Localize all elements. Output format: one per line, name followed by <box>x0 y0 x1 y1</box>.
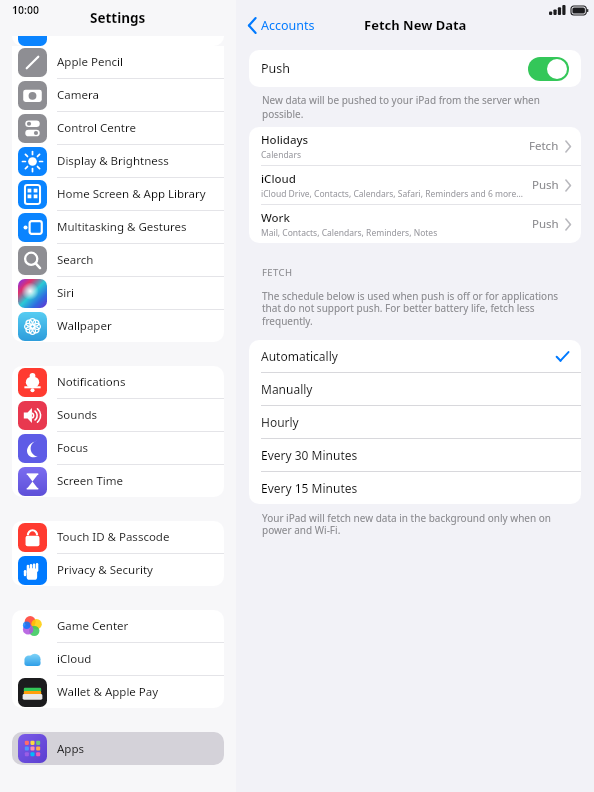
button[interactable]: Privacy & Security <box>12 554 224 586</box>
staticText: Notifications <box>57 374 126 390</box>
staticText: iCloud Drive, Contacts, Calendars, Safar… <box>261 188 523 200</box>
staticText: Settings <box>90 9 146 27</box>
button[interactable]: Multitasking & Gestures <box>12 211 224 243</box>
staticText: Search <box>57 252 94 268</box>
staticText: Every 15 Minutes <box>261 480 358 496</box>
staticText: Hourly <box>261 414 299 430</box>
staticText: iCloud <box>57 651 92 667</box>
button[interactable]: Focus <box>12 432 224 464</box>
button[interactable]: Siri <box>12 277 224 309</box>
button[interactable]: Apple Pencil <box>12 46 224 78</box>
staticText: Camera <box>57 87 99 103</box>
staticText: Sounds <box>57 407 98 423</box>
staticText: Game Center <box>57 618 129 634</box>
staticText: Automatically <box>261 348 338 364</box>
button[interactable]: Touch ID & Passcode <box>12 521 224 553</box>
button[interactable]: Notifications <box>12 366 224 398</box>
staticText: New data will be pushed to your iPad fro… <box>262 93 568 121</box>
button[interactable]: Camera <box>12 79 224 111</box>
button[interactable]: Search <box>12 244 224 276</box>
staticText: Every 30 Minutes <box>261 447 358 463</box>
staticText: Fetch <box>529 138 559 154</box>
button[interactable]: Wallpaper <box>12 310 224 342</box>
button[interactable]: Game Center <box>12 610 224 642</box>
staticText: Focus <box>57 440 89 456</box>
staticText: Push <box>261 60 291 77</box>
staticText: Apps <box>57 741 85 757</box>
button[interactable]: Push toggle, on <box>528 57 569 81</box>
button[interactable]: Automatically <box>249 340 581 372</box>
button[interactable]: Apps <box>12 732 224 765</box>
staticText: FETCH <box>262 266 293 279</box>
staticText: Work <box>261 210 290 226</box>
staticText: Push <box>532 177 559 193</box>
button[interactable]: Work <box>249 205 581 243</box>
staticText: Display & Brightness <box>57 153 169 169</box>
staticText: 10:00 <box>12 3 39 17</box>
button[interactable]: Holidays <box>249 127 581 165</box>
button[interactable]: iCloud <box>249 166 581 204</box>
staticText: Holidays <box>261 132 309 148</box>
button[interactable]: iCloud <box>12 643 224 675</box>
button[interactable]: Display & Brightness <box>12 145 224 177</box>
button[interactable]: Home Screen & App Library <box>12 178 224 210</box>
staticText: Wallet & Apple Pay <box>57 684 159 700</box>
staticText: Screen Time <box>57 473 124 489</box>
staticText: Multitasking & Gestures <box>57 219 187 235</box>
staticText: The schedule below is used when push is … <box>262 289 568 328</box>
staticText: Calendars <box>261 149 301 161</box>
staticText: Privacy & Security <box>57 562 153 578</box>
staticText: Wallpaper <box>57 318 112 334</box>
button[interactable]: Every 15 Minutes <box>249 472 581 504</box>
staticText: Home Screen & App Library <box>57 186 206 202</box>
staticText: Your iPad will fetch new data in the bac… <box>262 511 568 537</box>
staticText: Push <box>532 216 559 232</box>
staticText: Siri <box>57 285 74 301</box>
button[interactable]: Push <box>249 50 581 87</box>
staticText: Manually <box>261 381 313 397</box>
staticText: Touch ID & Passcode <box>57 529 170 545</box>
staticText: Fetch New Data <box>364 16 467 34</box>
button[interactable]: Screen Time <box>12 465 224 497</box>
button[interactable]: Every 30 Minutes <box>249 439 581 471</box>
button[interactable]: Wallet & Apple Pay <box>12 676 224 708</box>
button[interactable]: Hourly <box>249 406 581 438</box>
staticText: Mail, Contacts, Calendars, Reminders, No… <box>261 227 438 239</box>
staticText: Accounts <box>261 17 315 34</box>
staticText: Control Centre <box>57 120 136 136</box>
staticText: iCloud <box>261 171 296 187</box>
button[interactable]: Control Centre <box>12 112 224 144</box>
button[interactable]: Manually <box>249 373 581 405</box>
button[interactable]: Sounds <box>12 399 224 431</box>
staticText: Apple Pencil <box>57 54 123 70</box>
button[interactable]: Accounts <box>244 13 319 38</box>
